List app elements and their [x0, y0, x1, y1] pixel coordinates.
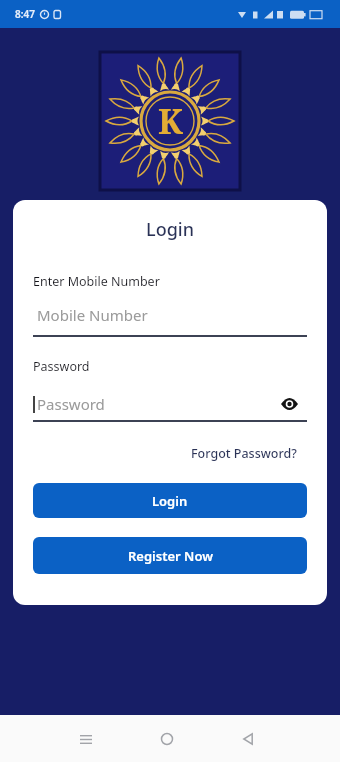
staticText: 8:47 — [15, 7, 35, 21]
button[interactable] — [147, 719, 187, 759]
button[interactable] — [281, 397, 298, 411]
staticText: Enter Mobile Number — [33, 273, 160, 290]
button[interactable]: Mobile Number — [33, 305, 307, 337]
button[interactable]: Login — [33, 483, 307, 518]
button[interactable] — [228, 719, 268, 759]
staticText: Mobile Number — [37, 305, 148, 325]
staticText: Password — [33, 358, 90, 375]
staticText: Login — [152, 492, 188, 510]
button[interactable]: Forgot Password? — [191, 445, 297, 462]
button[interactable]: Register Now — [33, 537, 307, 574]
button[interactable]: Password — [33, 394, 307, 422]
staticText: Register Now — [128, 547, 213, 565]
staticText: K — [158, 98, 183, 144]
button[interactable] — [66, 719, 106, 759]
staticText: Login — [33, 217, 307, 242]
staticText: Password — [37, 394, 105, 414]
